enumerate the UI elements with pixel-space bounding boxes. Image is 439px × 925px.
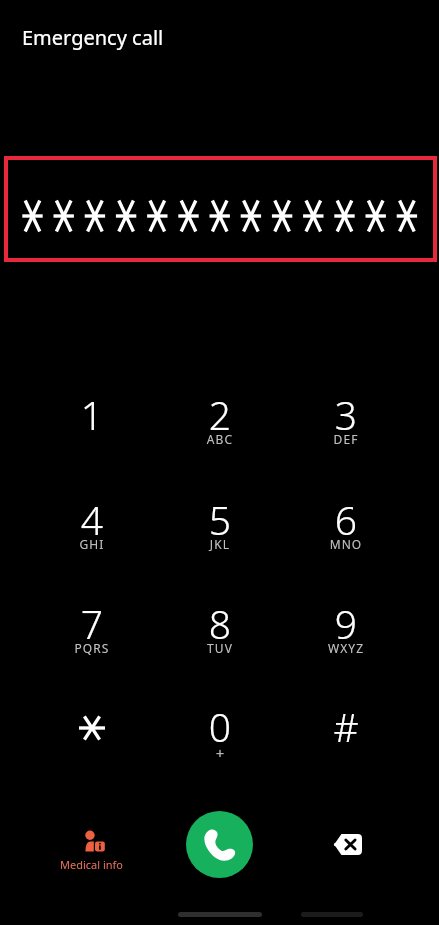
staticText: WXYZ <box>300 640 392 656</box>
staticText: GHI <box>46 536 138 552</box>
staticText: TUV <box>174 640 266 656</box>
staticText: 9 <box>300 597 392 650</box>
staticText: DEF <box>300 431 392 447</box>
button[interactable]: 1 <box>46 371 138 463</box>
staticText: MNO <box>300 536 392 552</box>
button[interactable]: * <box>46 683 138 775</box>
button[interactable]: 2 <box>174 371 266 463</box>
staticText: + <box>174 743 266 763</box>
staticText: 3 <box>300 388 392 441</box>
button[interactable]: Backspace <box>319 816 375 872</box>
staticText: # <box>300 700 392 753</box>
staticText: 4 <box>46 493 138 546</box>
staticText: 6 <box>300 493 392 546</box>
staticText: 5 <box>174 493 266 546</box>
staticText: JKL <box>174 536 266 552</box>
button[interactable]: Medical info <box>52 826 132 872</box>
button[interactable]: # <box>300 683 392 775</box>
staticText: 1 <box>46 388 138 441</box>
staticText: 2 <box>174 388 266 441</box>
staticText: Medical info <box>60 857 124 872</box>
button[interactable]: 0 <box>174 683 266 775</box>
staticText: Emergency call <box>22 24 164 51</box>
button[interactable]: 9 <box>300 580 392 672</box>
button[interactable]: 3 <box>300 371 392 463</box>
button[interactable]: 5 <box>174 476 266 568</box>
staticText: 7 <box>46 597 138 650</box>
button[interactable]: 6 <box>300 476 392 568</box>
staticText: 0 <box>174 700 266 753</box>
button[interactable]: Call <box>186 811 253 878</box>
staticText: PQRS <box>46 640 138 656</box>
staticText: ABC <box>174 431 266 447</box>
button[interactable]: 7 <box>46 580 138 672</box>
button[interactable]: 4 <box>46 476 138 568</box>
button[interactable]: 8 <box>174 580 266 672</box>
staticText: 8 <box>174 597 266 650</box>
